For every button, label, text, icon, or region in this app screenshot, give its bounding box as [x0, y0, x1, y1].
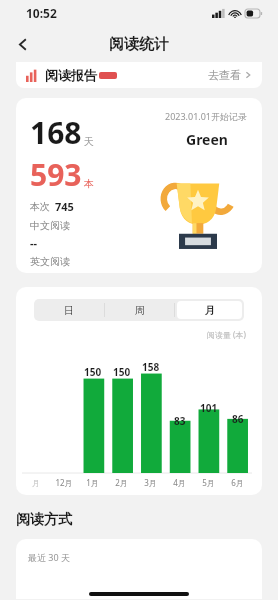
staticText: 中文阅读: [30, 219, 70, 232]
staticText: 最近 30 天: [28, 551, 70, 563]
staticText: --: [30, 235, 38, 250]
staticText: 745: [55, 199, 74, 214]
button[interactable]: 月: [177, 301, 242, 319]
staticText: 周: [135, 304, 145, 317]
staticText: 阅读报告: [45, 67, 97, 83]
button[interactable]: Back: [6, 27, 40, 61]
button[interactable]: 阅读报告: [16, 62, 262, 88]
staticText: 本次: [30, 200, 50, 213]
staticText: 10:52: [26, 5, 57, 21]
staticText: Green: [186, 130, 228, 149]
staticText: 83: [174, 414, 186, 428]
staticText: 5月: [202, 477, 215, 488]
staticText: 150: [113, 365, 131, 379]
staticText: 1月: [86, 477, 99, 488]
staticText: 本: [84, 177, 94, 190]
staticText: 12月: [55, 477, 73, 488]
staticText: 2023.01.01开始记录: [165, 110, 248, 122]
staticText: 3月: [144, 477, 157, 488]
staticText: 日: [64, 304, 74, 317]
staticText: 月: [32, 478, 40, 488]
staticText: 150: [84, 365, 102, 379]
staticText: 天: [84, 135, 94, 148]
staticText: 4月: [173, 477, 186, 488]
button[interactable]: 日: [36, 301, 102, 319]
staticText: 阅读方式: [16, 511, 72, 529]
staticText: 去查看: [208, 68, 241, 82]
staticText: 英文阅读: [30, 255, 70, 268]
staticText: 阅读量 (本): [207, 329, 246, 340]
staticText: 101: [200, 401, 218, 415]
staticText: 2月: [115, 477, 128, 488]
staticText: 158: [142, 360, 160, 374]
staticText: 86: [232, 412, 244, 426]
staticText: 593: [30, 154, 82, 195]
button[interactable]: 周: [107, 301, 172, 319]
staticText: 6月: [231, 477, 244, 488]
staticText: 阅读统计: [109, 35, 169, 54]
staticText: 月: [205, 304, 215, 317]
staticText: 168: [30, 112, 82, 153]
